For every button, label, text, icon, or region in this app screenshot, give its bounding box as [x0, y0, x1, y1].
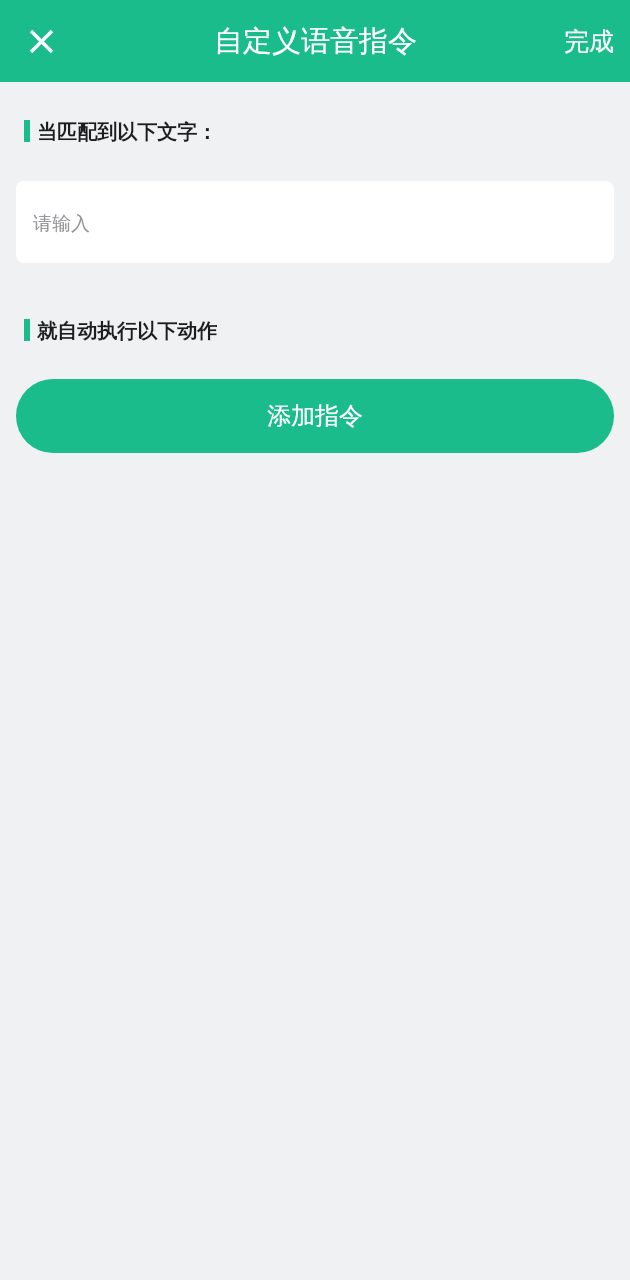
button[interactable]: 完成 — [548, 12, 630, 71]
button[interactable]: Close — [14, 14, 68, 68]
staticText: 完成 — [564, 26, 614, 57]
staticText: 添加指令 — [267, 401, 363, 431]
staticText: 就自动执行以下动作 — [37, 319, 217, 341]
staticText: 自定义语音指令 — [214, 23, 417, 60]
button[interactable]: 请输入 — [16, 181, 614, 263]
button[interactable]: 添加指令 — [16, 379, 614, 453]
staticText: 请输入 — [33, 212, 90, 236]
staticText: 当匹配到以下文字： — [37, 120, 217, 142]
